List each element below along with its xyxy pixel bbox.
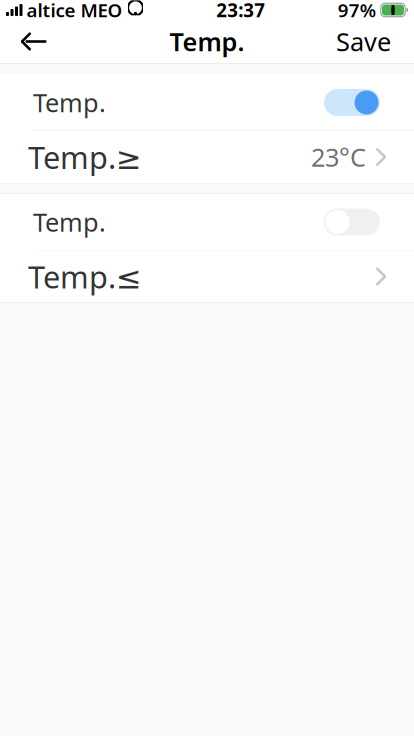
button[interactable]: Temp.≥ (0, 131, 414, 183)
staticText: 97% (338, 0, 376, 22)
staticText: Temp. (169, 25, 244, 58)
button[interactable]: Back (9, 20, 57, 63)
staticText: Temp. (33, 86, 106, 119)
staticText: 23:37 (216, 0, 265, 22)
staticText: Save (336, 25, 391, 58)
staticText: 23°C (311, 140, 366, 174)
staticText: Temp. (33, 205, 106, 239)
button[interactable]: Temp.≤ (0, 250, 414, 302)
button[interactable]: Save (322, 20, 405, 63)
staticText: Temp.≤ (28, 256, 142, 297)
button[interactable]: Temp. (0, 194, 414, 250)
staticText: Temp.≥ (28, 137, 142, 177)
staticText: altice MEO (26, 0, 122, 22)
button[interactable]: Temp. (0, 74, 414, 130)
